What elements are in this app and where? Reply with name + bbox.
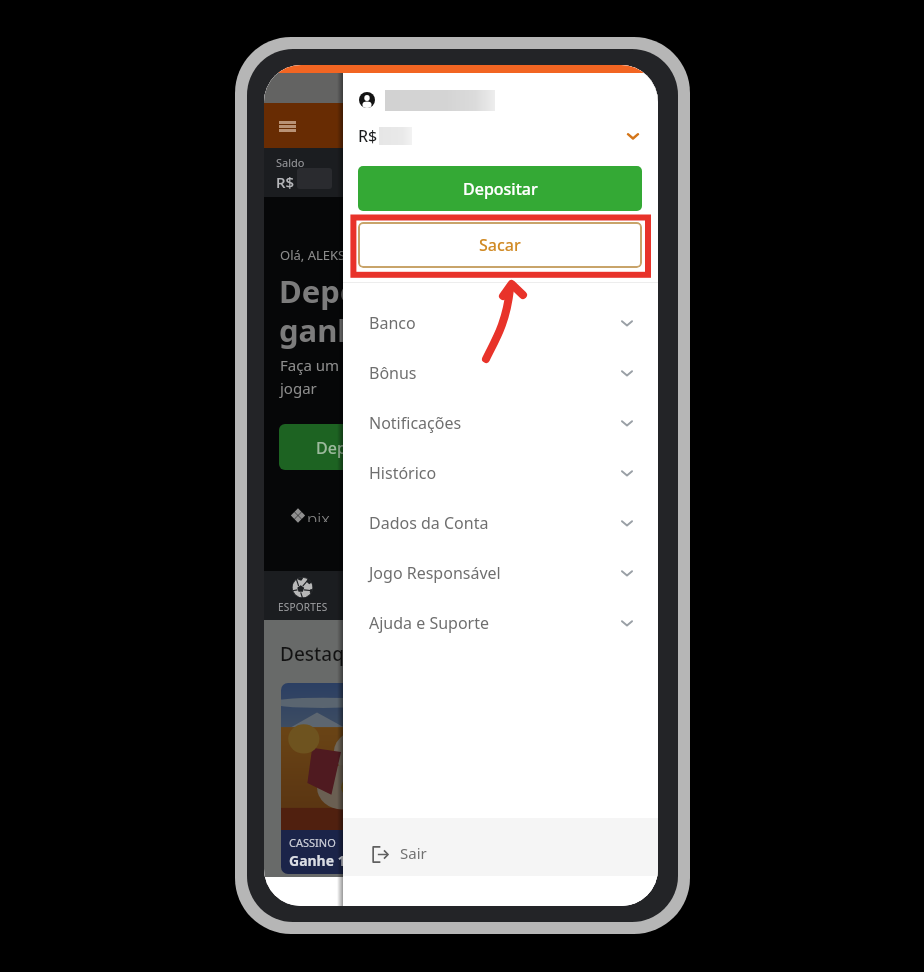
staticText: Bônus: [369, 362, 417, 384]
button[interactable]: CASSINO: [281, 683, 401, 874]
staticText: R$: [276, 172, 295, 192]
staticText: Dados da Conta: [369, 512, 489, 534]
staticText: Banco: [369, 312, 416, 334]
staticText: CASSINO: [289, 835, 336, 850]
staticText: Dep: [316, 437, 347, 459]
button[interactable]: Menu: [279, 121, 296, 132]
button[interactable]: Dep: [279, 424, 379, 470]
staticText: Depositar: [463, 178, 538, 200]
staticText: Sacar: [479, 234, 521, 256]
button[interactable]: Ajuda e Suporte: [343, 598, 658, 648]
staticText: Destaq: [280, 641, 344, 667]
button[interactable]: Jogo Responsável: [343, 548, 658, 598]
staticText: ESPORTES: [278, 600, 328, 614]
staticText: Olá, ALEKS: [280, 246, 346, 264]
button[interactable]: Sacar: [358, 222, 642, 268]
staticText: Notificações: [369, 412, 462, 434]
staticText: Saldo: [276, 155, 305, 170]
staticText: R$: [358, 125, 378, 147]
button[interactable]: Histórico: [343, 448, 658, 498]
button[interactable]: Bônus: [343, 348, 658, 398]
staticText: Ajuda e Suporte: [369, 612, 490, 634]
staticText: Ganhe 100: [289, 851, 362, 870]
button[interactable]: Depositar: [358, 166, 642, 211]
button[interactable]: Sair: [343, 818, 658, 876]
button[interactable]: [343, 85, 658, 115]
button[interactable]: Dados da Conta: [343, 498, 658, 548]
button[interactable]: Notificações: [343, 398, 658, 448]
button[interactable]: R$: [343, 121, 658, 151]
staticText: jogar: [280, 378, 317, 398]
staticText: pix: [307, 507, 330, 522]
button[interactable]: Esportes: [274, 577, 331, 614]
staticText: Faça um: [280, 355, 340, 375]
staticText: Depo: [279, 270, 360, 312]
staticText: Jogo Responsável: [369, 562, 501, 584]
staticText: ganh: [279, 309, 358, 351]
staticText: Sair: [400, 843, 427, 863]
button[interactable]: Banco: [343, 298, 658, 348]
staticText: Histórico: [369, 462, 437, 484]
